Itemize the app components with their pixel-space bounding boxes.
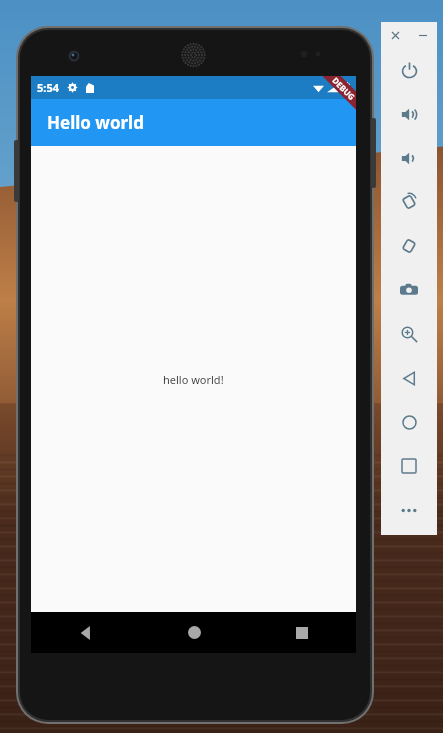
button[interactable]: Back (381, 356, 437, 400)
button[interactable]: Home (381, 400, 437, 444)
staticText: 5:54 (37, 80, 59, 95)
button[interactable]: Power (381, 48, 437, 92)
button[interactable]: Take screenshot (381, 268, 437, 312)
staticText: DEBUG (330, 76, 356, 102)
button[interactable]: Back (31, 612, 140, 653)
button[interactable]: Zoom (381, 312, 437, 356)
button[interactable]: Volume up (381, 92, 437, 136)
button[interactable]: More (381, 488, 437, 532)
button[interactable]: Rotate left (381, 180, 437, 224)
button[interactable]: Rotate right (381, 224, 437, 268)
button[interactable]: Recent apps (381, 444, 437, 488)
staticText: hello world! (163, 372, 224, 387)
button[interactable]: Recent apps (248, 612, 356, 653)
staticText: Hello world (47, 111, 144, 134)
button[interactable]: Volume down (381, 136, 437, 180)
button[interactable]: Close (381, 22, 409, 48)
button[interactable]: Home (140, 612, 248, 653)
button[interactable]: Minimize (409, 22, 437, 48)
